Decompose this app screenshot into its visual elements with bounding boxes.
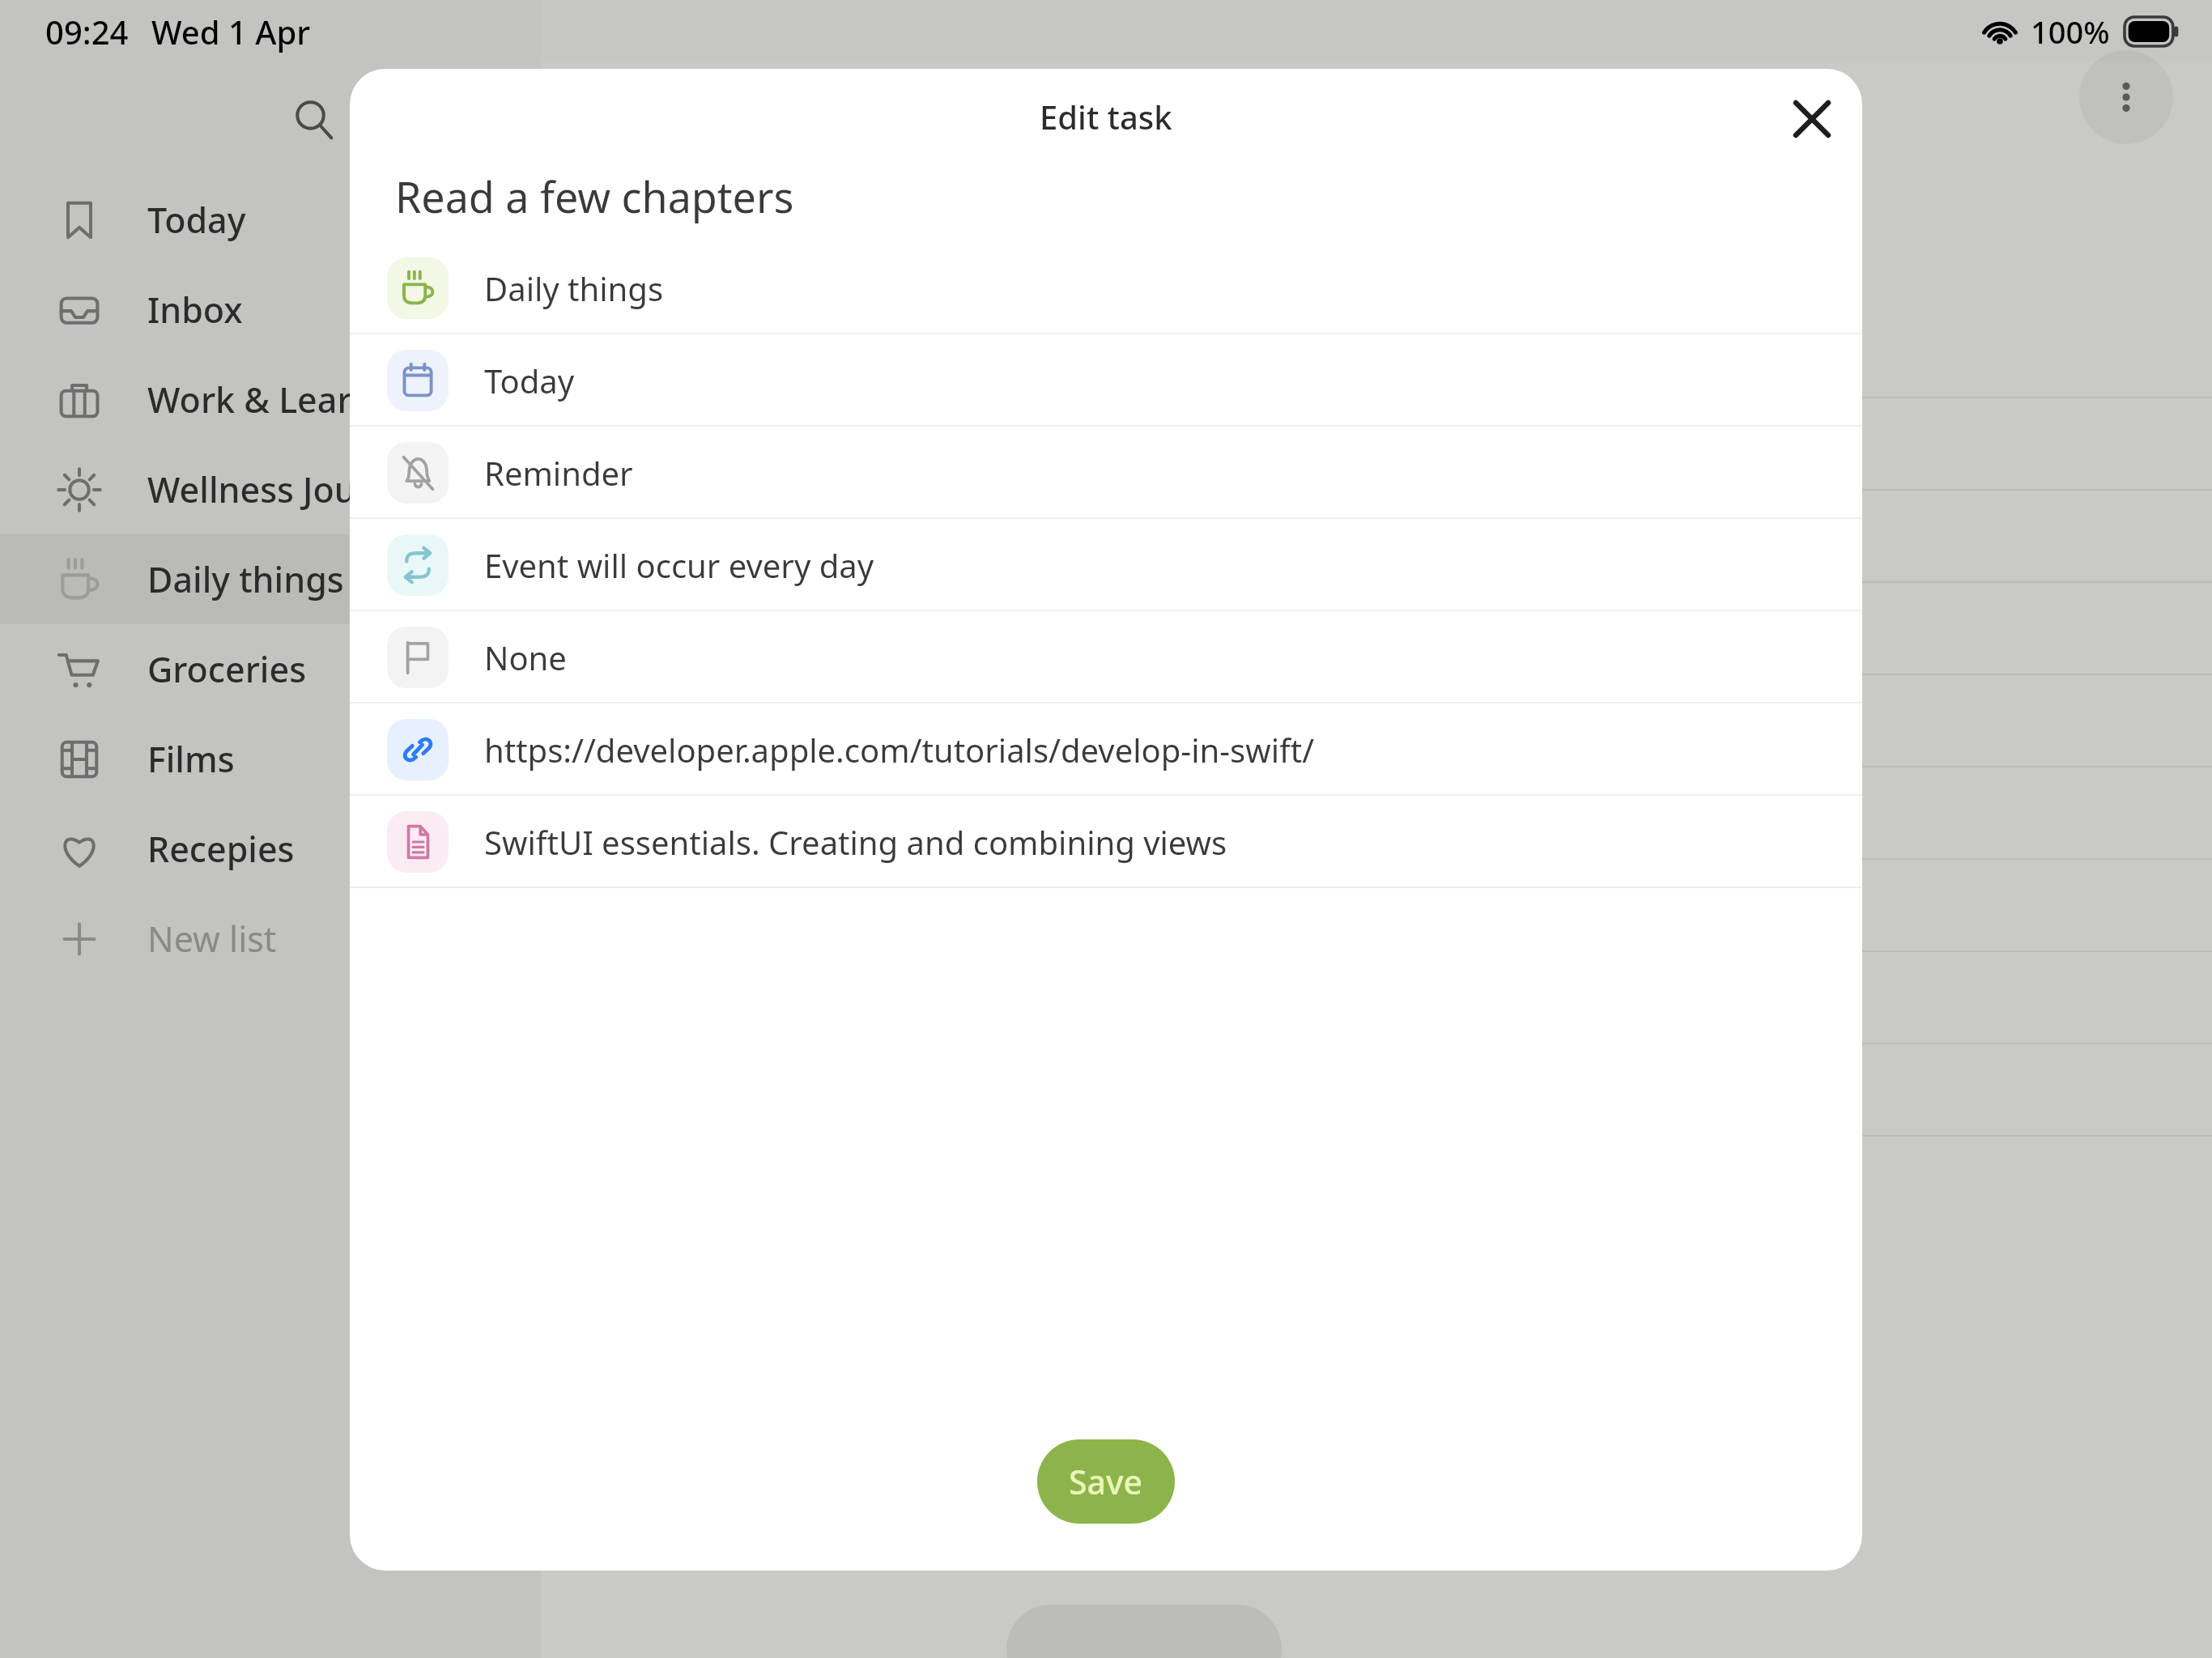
staticText: Groceries (147, 645, 307, 693)
button[interactable]: Daily things (350, 242, 1862, 334)
button[interactable]: Films (0, 714, 541, 804)
button[interactable]: Today (0, 175, 541, 265)
button[interactable]: None (350, 611, 1862, 704)
staticText: Event will occur every day (484, 543, 874, 587)
staticText: Recepies (147, 825, 295, 873)
button[interactable]: Inbox (0, 265, 541, 355)
staticText: Work & Learn (147, 376, 374, 423)
staticText: Save (1069, 1459, 1143, 1504)
button[interactable]: Close (1775, 82, 1849, 156)
button[interactable]: SwiftUI essentials. Creating and combini… (350, 796, 1862, 888)
button[interactable]: Recepies (0, 804, 541, 894)
staticText: New list (147, 915, 277, 963)
staticText: Daily things (484, 266, 664, 310)
button[interactable]: Daily things (0, 534, 541, 624)
staticText: SwiftUI essentials. Creating and combini… (484, 820, 1227, 864)
staticText: https://developer.apple.com/tutorials/de… (484, 728, 1315, 772)
staticText: 100% (2031, 11, 2110, 53)
button[interactable]: Wellness Journey (0, 444, 541, 534)
button[interactable]: Search (275, 81, 353, 159)
staticText: Films (147, 735, 235, 783)
staticText: 09:24 (45, 10, 129, 53)
staticText: Read a few chapters (395, 168, 794, 225)
staticText: Reminder (484, 451, 633, 495)
staticText: Wellness Journey (147, 466, 431, 513)
button[interactable]: Work & Learn (0, 355, 541, 444)
staticText: Edit task (1040, 95, 1172, 138)
button[interactable]: https://developer.apple.com/tutorials/de… (350, 704, 1862, 796)
button[interactable]: Reminder (350, 427, 1862, 519)
button[interactable]: Save (1037, 1439, 1175, 1524)
button[interactable]: Groceries (0, 624, 541, 714)
staticText: Wed 1 Apr (151, 10, 311, 53)
button[interactable]: More options (2079, 50, 2173, 144)
staticText: Today (484, 359, 575, 402)
staticText: None (484, 636, 567, 679)
button[interactable]: Event will occur every day (350, 519, 1862, 611)
button[interactable]: New list (0, 894, 541, 984)
staticText: Daily things (147, 555, 344, 603)
button[interactable]: Today (350, 334, 1862, 427)
staticText: Today (147, 196, 246, 244)
staticText: Inbox (147, 286, 243, 334)
